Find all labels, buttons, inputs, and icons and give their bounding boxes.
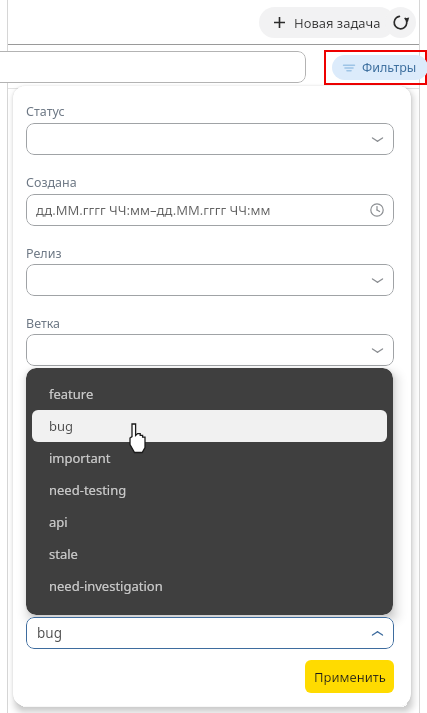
staticText: feature xyxy=(49,385,94,403)
staticText: stale xyxy=(49,545,78,563)
button[interactable]: need-testing xyxy=(32,474,387,506)
button[interactable]: stale xyxy=(32,538,387,570)
staticText: bug xyxy=(49,417,74,435)
staticText: important xyxy=(49,449,111,467)
staticText: Создана xyxy=(26,174,77,191)
button[interactable]: Применить xyxy=(305,660,394,693)
button[interactable]: feature xyxy=(32,378,387,410)
button[interactable]: bug xyxy=(32,410,387,442)
staticText: need-testing xyxy=(49,481,127,499)
button[interactable] xyxy=(0,51,306,83)
staticText: Релиз xyxy=(26,245,62,262)
staticText: need-investigation xyxy=(49,577,163,595)
staticText: Новая задача xyxy=(294,14,381,32)
button[interactable]: Фильтры xyxy=(332,55,427,80)
button[interactable]: Выбрать xyxy=(26,334,394,366)
staticText: bug xyxy=(37,624,62,642)
staticText: Фильтры xyxy=(362,59,417,76)
staticText: Статус xyxy=(26,103,65,120)
button[interactable]: Выбрать xyxy=(26,264,394,296)
button[interactable]: Новая задача xyxy=(259,7,395,38)
staticText: api xyxy=(49,513,68,531)
button[interactable]: Обновить xyxy=(385,7,416,38)
staticText: дд.ММ.гггг ЧЧ:мм–дд.ММ.гггг ЧЧ:мм xyxy=(36,201,271,219)
staticText: Применить xyxy=(314,668,386,686)
button[interactable]: bug xyxy=(26,617,394,649)
button[interactable]: api xyxy=(32,506,387,538)
button[interactable]: дд.ММ.гггг ЧЧ:мм–дд.ММ.гггг ЧЧ:мм xyxy=(26,194,394,226)
staticText: Ветка xyxy=(26,315,61,332)
button[interactable]: need-investigation xyxy=(32,570,387,602)
button[interactable]: Выбрать xyxy=(26,123,394,155)
button[interactable]: important xyxy=(32,442,387,474)
